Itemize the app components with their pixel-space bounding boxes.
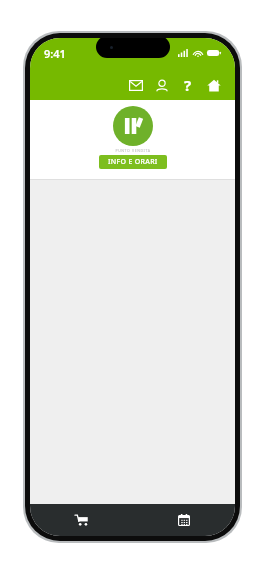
staticText: PUNTO VENDITA <box>115 148 151 153</box>
button[interactable]: Shop <box>30 504 132 536</box>
staticText: 9:41 <box>44 46 66 61</box>
button[interactable]: Messages <box>123 72 149 98</box>
button[interactable]: INFO E ORARI <box>99 155 167 169</box>
staticText: ? <box>184 75 192 95</box>
button[interactable]: Home <box>201 72 227 98</box>
button[interactable]: Account <box>149 72 175 98</box>
staticText: INFO E ORARI <box>108 157 158 167</box>
button[interactable]: Help <box>175 72 201 98</box>
button[interactable]: Calendar <box>132 504 235 536</box>
